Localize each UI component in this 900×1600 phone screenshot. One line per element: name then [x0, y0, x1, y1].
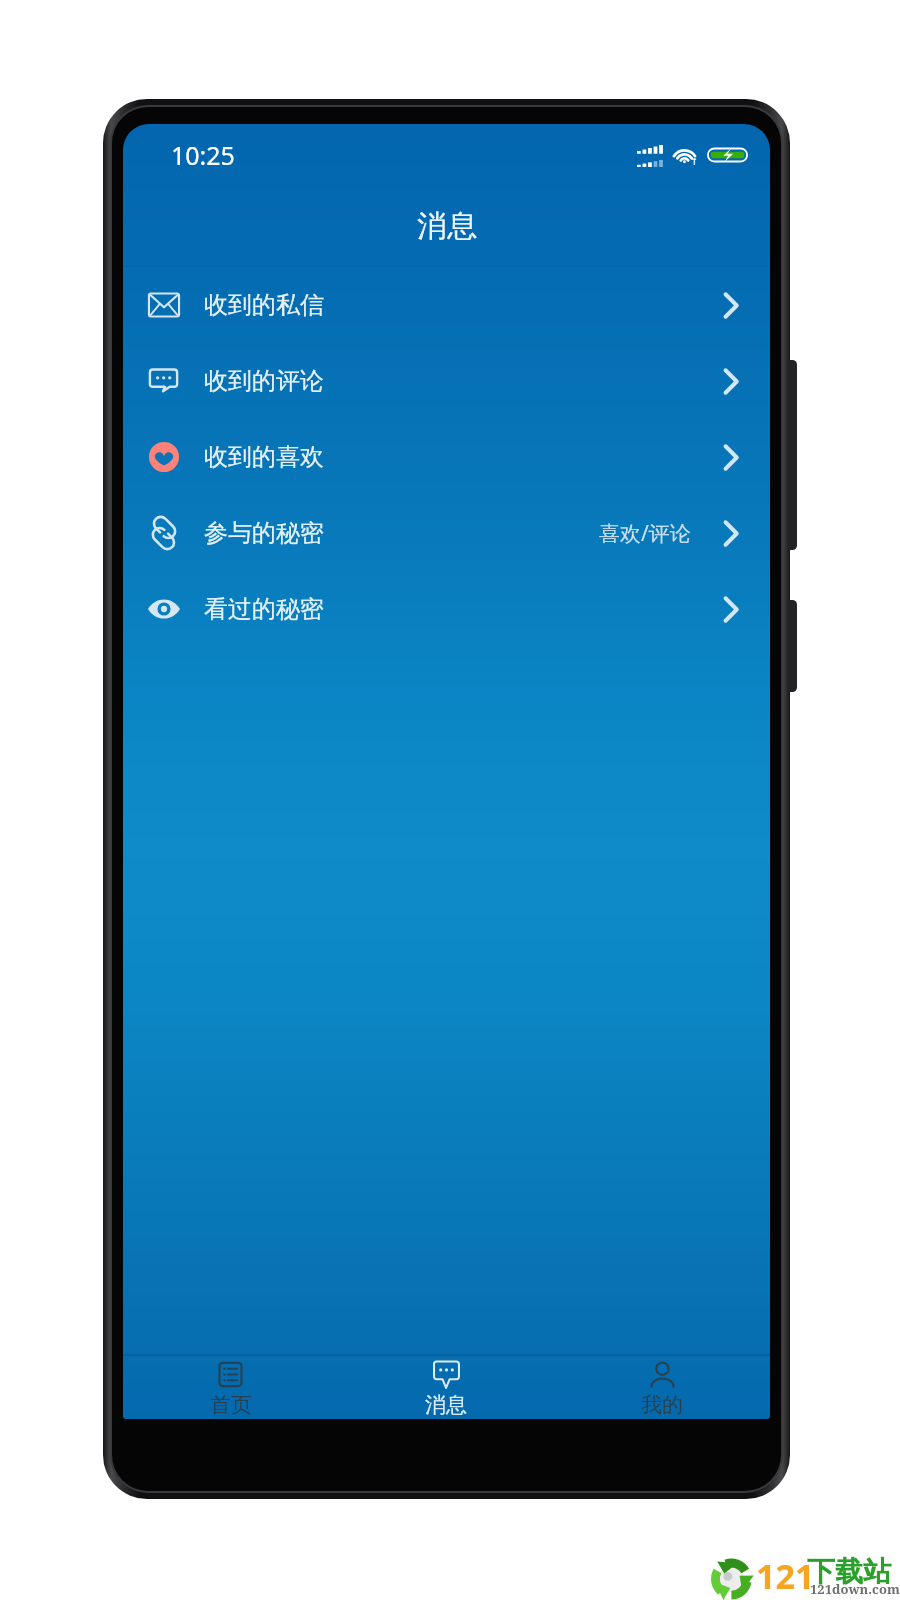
staticText: 下载站 — [807, 1554, 891, 1589]
staticText: 121 — [756, 1553, 815, 1599]
button[interactable]: 收到的喜欢 — [123, 419, 770, 495]
staticText: 参与的秘密 — [204, 518, 324, 548]
staticText: 看过的秘密 — [204, 594, 324, 624]
staticText: 消息 — [425, 1392, 467, 1418]
button[interactable]: 收到的评论 — [123, 343, 770, 419]
button[interactable]: 参与的秘密 — [123, 495, 770, 571]
button[interactable]: 看过的秘密 — [123, 571, 770, 647]
staticText: 10:25 — [171, 138, 235, 172]
button[interactable]: 消息 — [338, 1356, 554, 1419]
staticText: 收到的私信 — [204, 290, 324, 320]
staticText: 喜欢/评论 — [599, 519, 691, 548]
button[interactable]: 我的 — [554, 1356, 770, 1419]
button[interactable]: 收到的私信 — [123, 267, 770, 343]
staticText: 我的 — [641, 1392, 683, 1418]
staticText: 首页 — [210, 1392, 252, 1418]
staticText: 消息 — [417, 207, 477, 245]
staticText: 收到的喜欢 — [204, 442, 324, 472]
staticText: 121down.com — [810, 1580, 900, 1598]
button[interactable]: 首页 — [123, 1356, 338, 1419]
staticText: 收到的评论 — [204, 366, 324, 396]
